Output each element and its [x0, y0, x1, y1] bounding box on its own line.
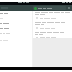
button[interactable]	[0, 11, 32, 16]
button[interactable]	[0, 21, 32, 26]
button[interactable]	[35, 22, 72, 32]
button[interactable]	[0, 26, 32, 31]
button[interactable]	[33, 6, 66, 10]
button[interactable]	[35, 12, 72, 22]
button[interactable]	[0, 38, 32, 43]
button[interactable]	[0, 31, 32, 36]
button[interactable]	[0, 16, 32, 21]
button[interactable]	[35, 32, 72, 38]
